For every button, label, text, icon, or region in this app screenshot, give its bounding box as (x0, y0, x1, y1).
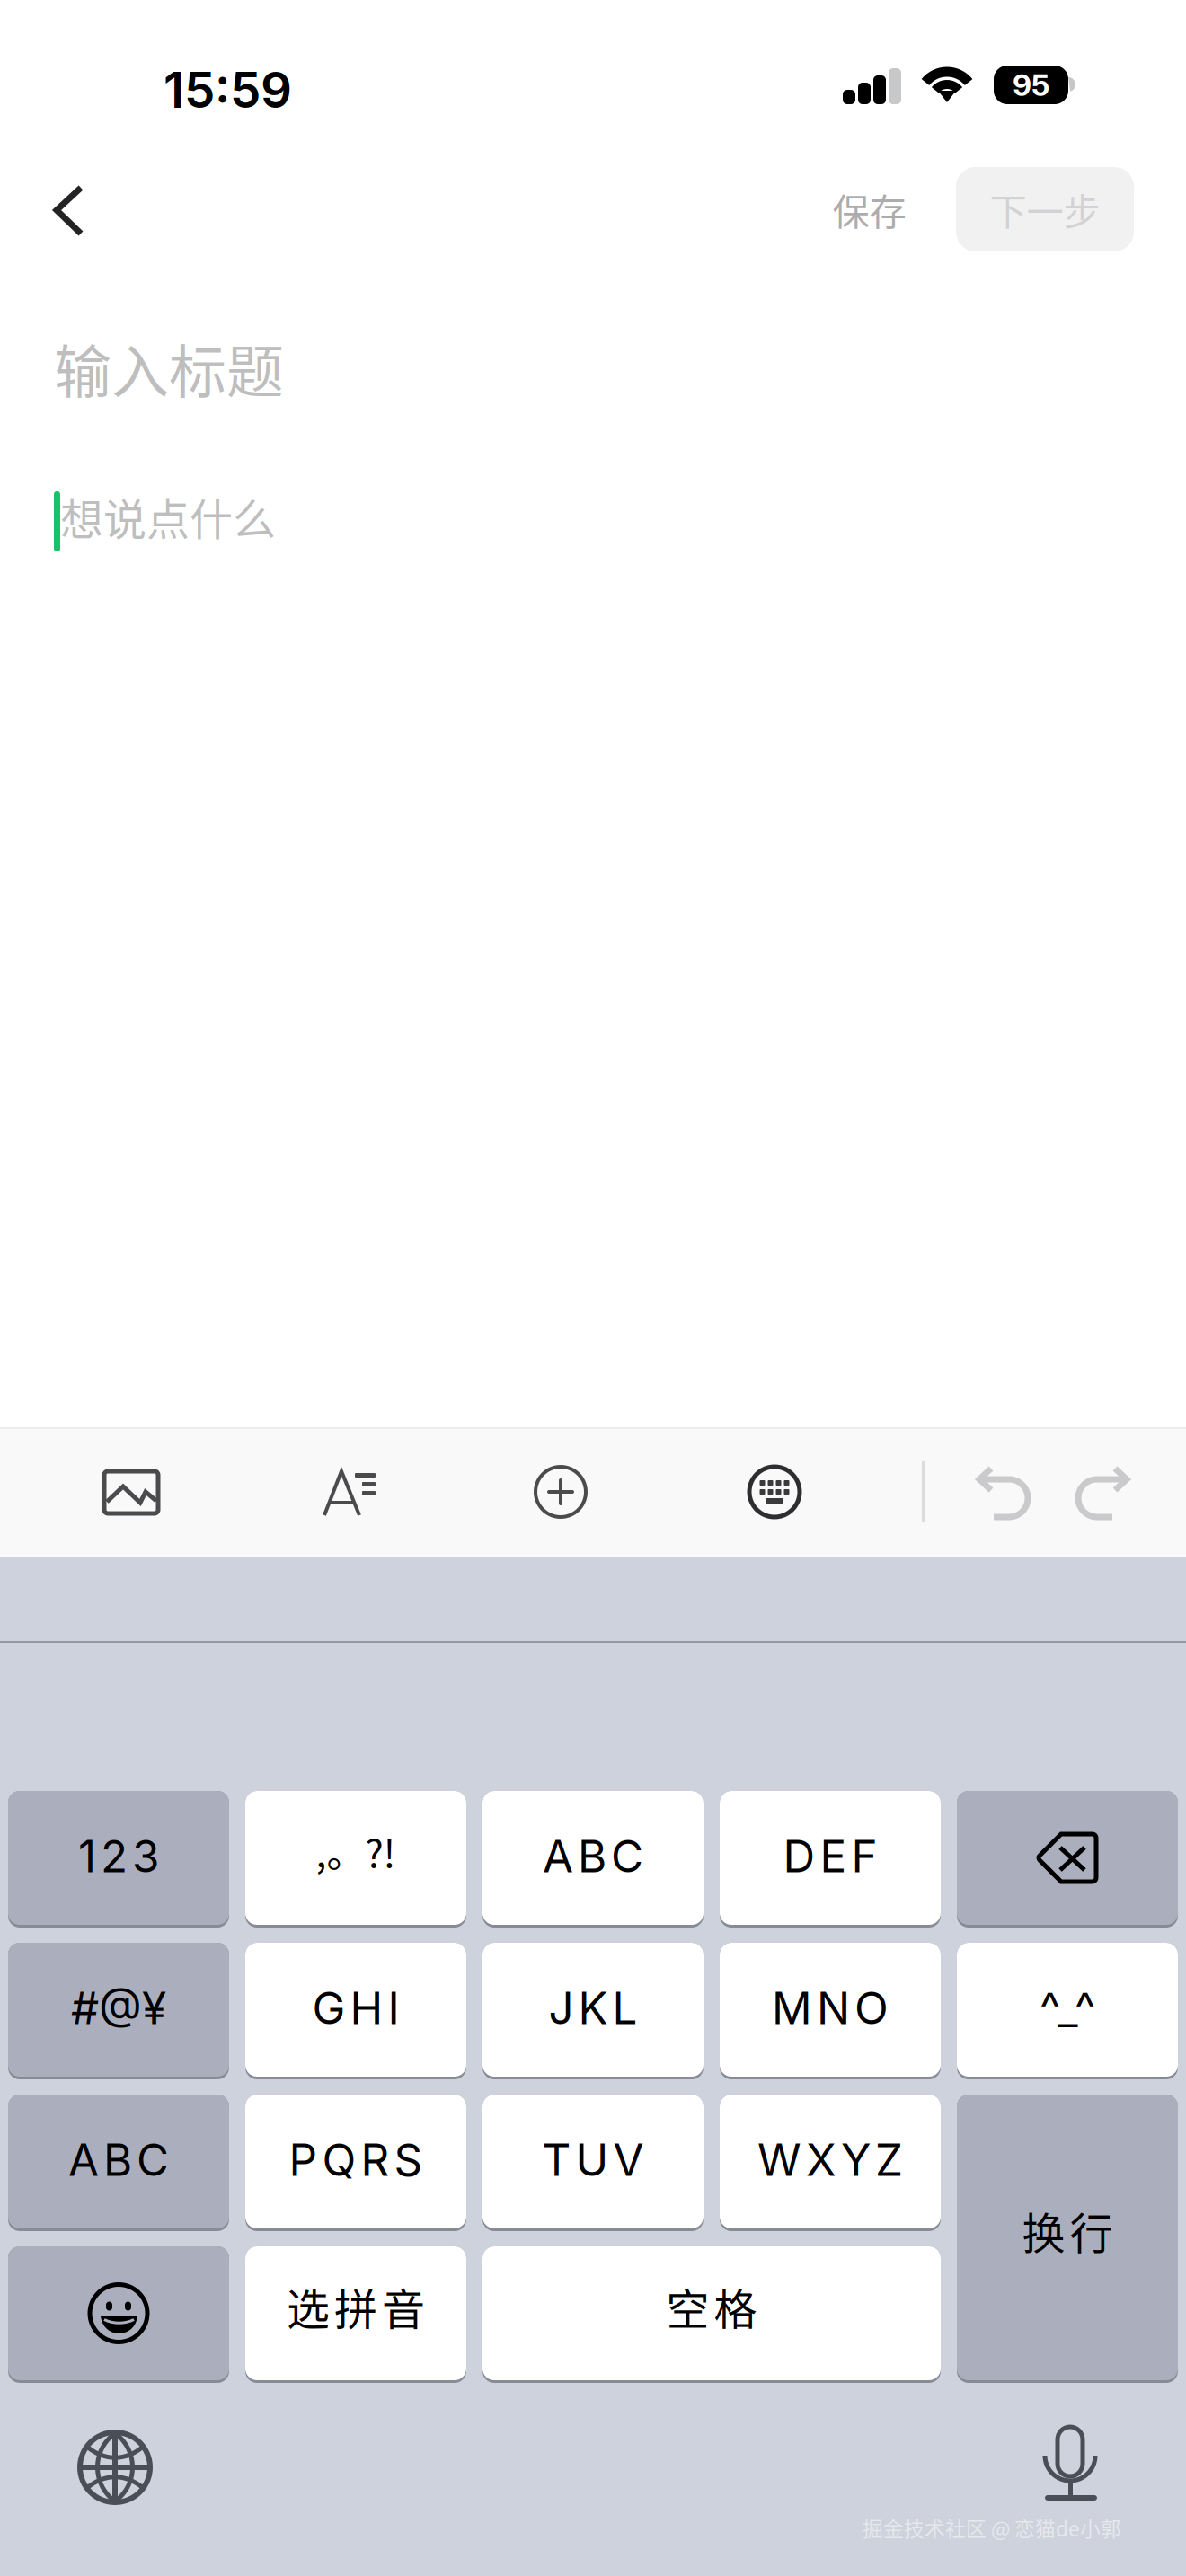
button[interactable]: Dictate (1045, 2427, 1097, 2502)
button[interactable]: JKL (482, 1943, 704, 2080)
button[interactable]: #@¥ (8, 1943, 229, 2080)
staticText: ,。?! (316, 1823, 396, 1878)
staticText: 空格 (666, 2275, 757, 2337)
button[interactable]: Text style (323, 1469, 376, 1518)
staticText: ^_^ (1040, 1981, 1095, 2035)
button[interactable]: 换行 (957, 2095, 1178, 2384)
button[interactable]: ABC (8, 2095, 229, 2232)
button[interactable]: Redo (1075, 1468, 1131, 1522)
staticText: 15:59 (164, 60, 292, 119)
staticText: 输入标题 (54, 326, 284, 409)
button[interactable]: Undo (977, 1468, 1032, 1522)
button[interactable]: Back (22, 163, 128, 269)
button[interactable]: 123 (8, 1791, 229, 1928)
button[interactable]: Delete (957, 1791, 1178, 1928)
button[interactable]: 选拼音 (245, 2246, 466, 2384)
button[interactable]: ABC (482, 1791, 704, 1928)
staticText: ABC (68, 2133, 169, 2187)
button[interactable]: Emoji (8, 2246, 229, 2384)
button[interactable]: 下一步 (956, 167, 1134, 251)
button[interactable]: MNO (720, 1943, 941, 2080)
staticText: TUV (542, 2133, 644, 2187)
staticText: 95 (1013, 67, 1049, 103)
button[interactable]: 保存 (804, 167, 934, 251)
button[interactable]: Hide keyboard (748, 1465, 801, 1519)
staticText: 想说点什么 (60, 485, 276, 548)
staticText: #@¥ (71, 1981, 166, 2035)
staticText: 换行 (1022, 2199, 1113, 2261)
button[interactable]: Switch keyboard (79, 2431, 151, 2503)
staticText: 保存 (832, 182, 906, 236)
staticText: DEF (783, 1829, 877, 1883)
button[interactable]: PQRS (245, 2095, 466, 2232)
button[interactable]: GHI (245, 1943, 466, 2080)
button[interactable]: 空格 (482, 2246, 941, 2384)
staticText: 123 (78, 1829, 159, 1883)
button[interactable]: ,。?! (245, 1791, 466, 1928)
staticText: 选拼音 (287, 2275, 425, 2337)
staticText: WXYZ (757, 2133, 903, 2187)
staticText: GHI (312, 1981, 399, 2035)
button[interactable]: DEF (720, 1791, 941, 1928)
staticText: 下一步 (990, 182, 1100, 236)
staticText: 掘金技术社区 @ 恋猫de小郭 (863, 2513, 1121, 2542)
button[interactable]: WXYZ (720, 2095, 941, 2232)
staticText: JKL (549, 1981, 637, 2035)
staticText: ABC (543, 1829, 643, 1883)
staticText: PQRS (289, 2133, 423, 2187)
button[interactable]: Add (534, 1465, 588, 1519)
button[interactable]: Insert image (104, 1471, 158, 1513)
staticText: MNO (772, 1981, 889, 2035)
button[interactable]: TUV (482, 2095, 704, 2232)
button[interactable]: ^_^ (957, 1943, 1178, 2080)
